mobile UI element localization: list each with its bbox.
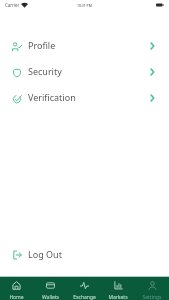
staticText: Verification [28,91,76,103]
button[interactable]: Home [0,277,33,300]
staticText: Settings [142,294,162,300]
staticText: Security [28,65,62,77]
button[interactable]: Verification [0,84,169,110]
button[interactable]: Profile [0,32,169,58]
button[interactable]: Settings [135,277,169,300]
button[interactable]: Wallets [33,277,67,300]
staticText: 10:31 PM [77,3,92,8]
staticText: Markets [108,294,128,300]
staticText: Log Out [28,248,62,260]
button[interactable]: Exchange [67,277,101,300]
staticText: Home [9,294,24,300]
button[interactable]: Markets [101,277,135,300]
staticText: Wallets [42,294,59,300]
staticText: Carrier [5,2,20,8]
staticText: Exchange [73,294,96,300]
button[interactable]: Log Out [0,241,169,267]
button[interactable]: Security [0,58,169,84]
staticText: Profile [28,39,56,51]
